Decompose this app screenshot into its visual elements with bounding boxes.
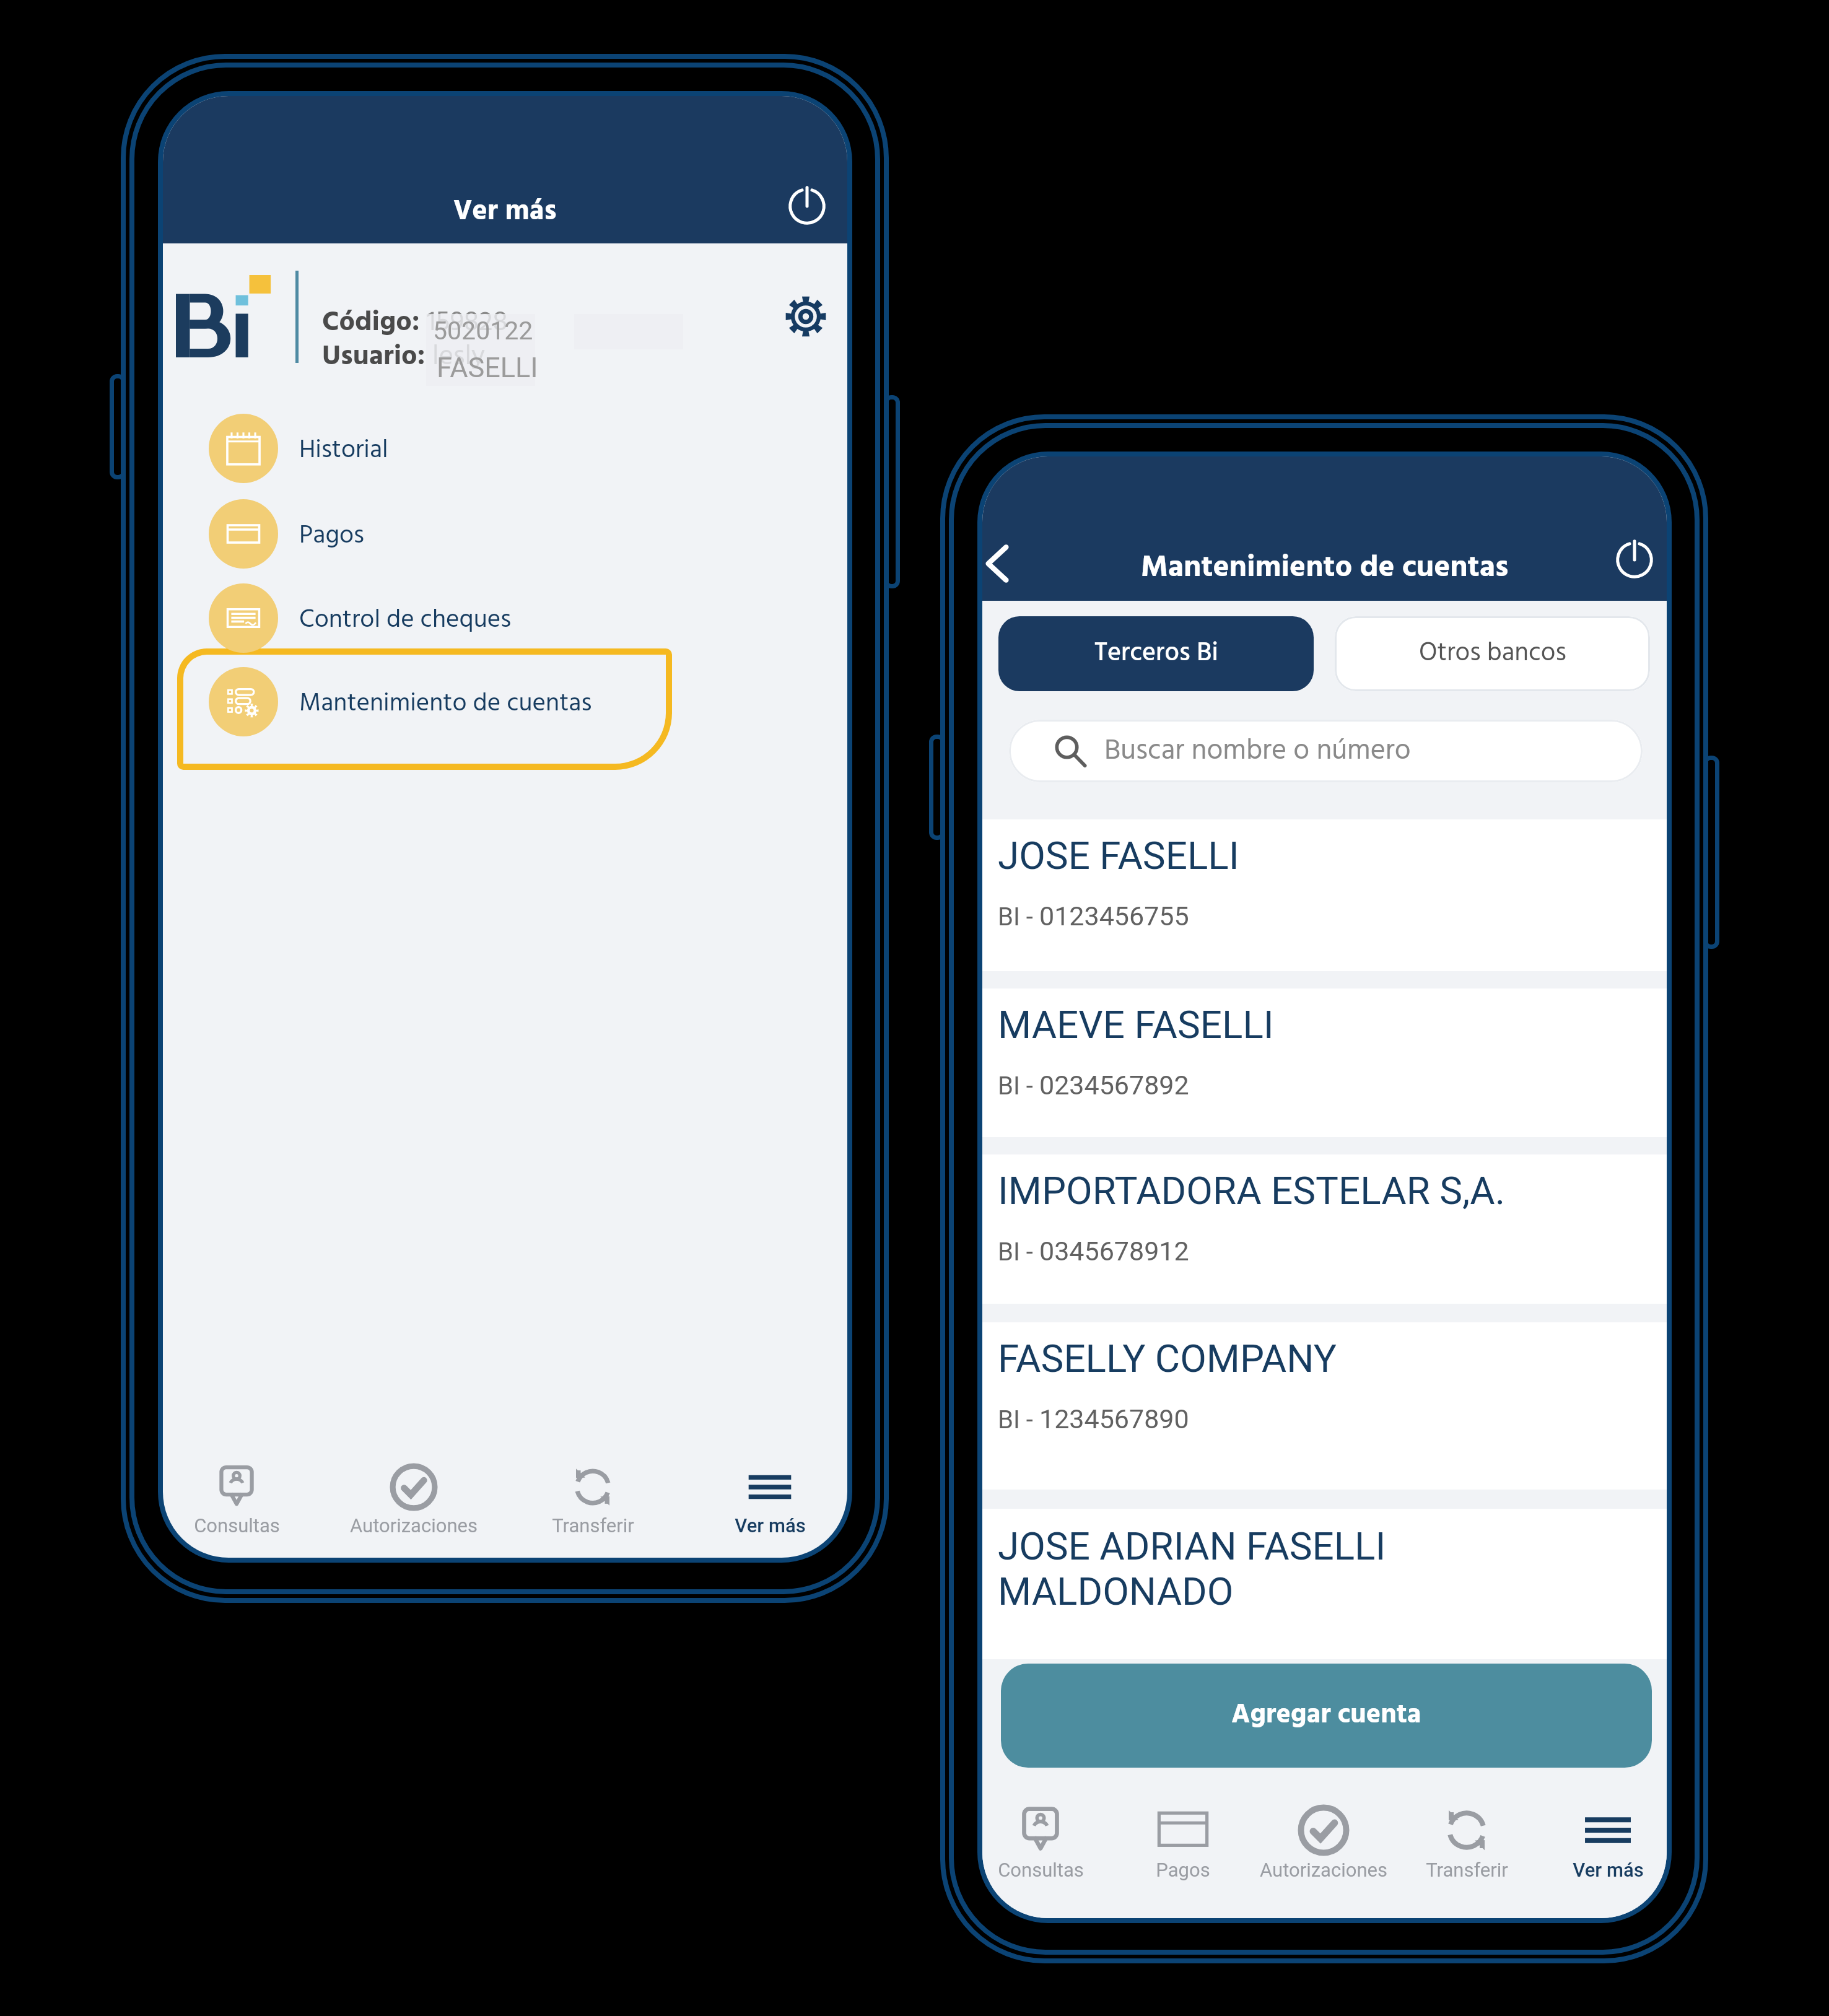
button[interactable]: Consultas <box>982 1804 1115 1918</box>
button[interactable]: Control de cheques <box>209 583 766 653</box>
staticText: Otros bancos <box>1419 633 1566 674</box>
staticText: lesly <box>432 335 486 380</box>
button[interactable]: Transferir <box>1392 1804 1541 1918</box>
staticText: Autorizaciones <box>1260 1859 1387 1881</box>
button[interactable]: Consultas <box>163 1463 325 1558</box>
button[interactable]: Cerrar sesión <box>1610 536 1659 584</box>
button[interactable]: Historial <box>209 414 766 483</box>
button[interactable]: MAEVE FASELLI <box>982 988 1667 1137</box>
staticText: Ver más <box>453 189 557 235</box>
staticText: Ver más <box>1573 1859 1644 1881</box>
staticText: FASELLY COMPANY <box>998 1336 1337 1381</box>
staticText: Transferir <box>552 1514 634 1537</box>
staticText: BI - <box>998 1071 1039 1101</box>
staticText: JOSE FASELLI <box>998 833 1239 878</box>
staticText: IMPORTADORA ESTELAR S,A. <box>998 1168 1506 1213</box>
staticText: MAEVE FASELLI <box>998 1002 1274 1047</box>
staticText: 5020122 <box>433 316 533 346</box>
button[interactable]: IMPORTADORA ESTELAR S,A. <box>982 1154 1667 1304</box>
staticText: Pagos <box>299 516 364 557</box>
button[interactable]: Agregar cuenta <box>1001 1664 1652 1768</box>
button[interactable]: Autorizaciones <box>1249 1804 1398 1918</box>
button[interactable]: JOSE FASELLI <box>982 819 1667 971</box>
button[interactable]: Transferir <box>504 1463 681 1558</box>
button[interactable]: Mantenimiento de cuentas <box>209 667 766 736</box>
button[interactable]: Terceros Bi <box>998 616 1314 691</box>
button[interactable]: Ver más <box>1534 1804 1667 1918</box>
staticText: Mantenimiento de cuentas <box>299 684 592 725</box>
staticText: Consultas <box>194 1514 280 1537</box>
staticText: Usuario: <box>322 335 432 380</box>
staticText: 159828 <box>427 301 508 346</box>
staticText: Buscar nombre o número <box>1104 728 1411 774</box>
staticText: Transferir <box>1426 1859 1508 1881</box>
button[interactable]: Ver más <box>681 1463 847 1558</box>
staticText: Ver más <box>735 1514 806 1537</box>
staticText: BI - <box>998 1405 1039 1434</box>
staticText: JOSE ADRIAN FASELLI <box>998 1524 1386 1569</box>
staticText: Historial <box>299 430 388 471</box>
staticText: Terceros Bi <box>1094 633 1218 674</box>
staticText: BI - <box>998 1237 1039 1267</box>
button[interactable]: JOSE ADRIAN FASELLI <box>982 1509 1667 1659</box>
staticText: MALDONADO <box>998 1569 1234 1614</box>
button[interactable]: Atrás <box>982 535 1026 592</box>
button[interactable]: Cerrar sesión <box>783 182 831 230</box>
staticText: Código: <box>322 301 427 346</box>
button[interactable]: Autorizaciones <box>325 1463 502 1558</box>
staticText: Pagos <box>1156 1859 1210 1881</box>
button[interactable]: Pagos <box>1109 1804 1257 1918</box>
button[interactable]: Otros bancos <box>1335 616 1650 691</box>
staticText: Consultas <box>998 1859 1084 1881</box>
staticText: Mantenimiento de cuentas <box>1141 544 1509 592</box>
staticText: 0234567892 <box>1039 1070 1189 1101</box>
staticText: BI - <box>998 902 1039 932</box>
staticText: 0345678912 <box>1039 1236 1189 1267</box>
staticText: Autorizaciones <box>350 1514 478 1537</box>
button[interactable]: Configuración <box>781 292 831 341</box>
staticText: Control de cheques <box>299 600 512 641</box>
staticText: FASELLI <box>437 351 538 384</box>
staticText: 0123456755 <box>1039 901 1189 932</box>
staticText: 1234567890 <box>1039 1403 1189 1434</box>
button[interactable]: Buscar nombre o número <box>1009 720 1643 782</box>
button[interactable]: FASELLY COMPANY <box>982 1322 1667 1490</box>
button[interactable]: Pagos <box>209 499 766 569</box>
staticText: Agregar cuenta <box>1231 1694 1421 1737</box>
